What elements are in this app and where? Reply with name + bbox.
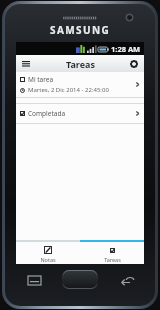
staticText: Completada [28,109,135,118]
staticText: Tareas [104,256,121,263]
staticText: SAMSUNG [50,23,111,37]
staticText: Mi tarea [28,75,54,84]
button[interactable]: Mi tarea [16,72,144,97]
staticText: 1:28 AM [111,44,141,54]
button[interactable]: Settings [127,57,141,71]
button[interactable]: Home [63,271,97,288]
button[interactable]: Completada [16,104,144,123]
staticText: Notas [40,256,56,263]
button[interactable]: Back [114,271,140,289]
button[interactable]: Notas [16,242,80,264]
staticText: Martes, 2 Dic 2014 - 22:45:00 [28,86,109,94]
button[interactable]: Menu [21,271,47,289]
button[interactable]: Open navigation drawer [19,57,33,71]
staticText: Tareas [66,58,95,70]
button[interactable]: Tareas [80,242,144,264]
